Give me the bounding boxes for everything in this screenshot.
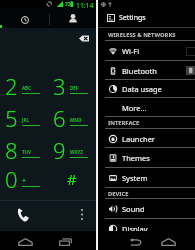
- staticText: Launcher: [122, 134, 155, 144]
- button[interactable]: System: [98, 168, 195, 188]
- staticText: DEF: [70, 85, 79, 91]
- staticText: 9: [53, 135, 66, 165]
- button[interactable]: Themes: [98, 148, 195, 168]
- button[interactable]: Data usage: [98, 80, 195, 98]
- button[interactable]: 5: [0, 97, 48, 129]
- staticText: 11:14: [76, 1, 94, 9]
- staticText: 8: [5, 135, 18, 165]
- staticText: 3: [53, 71, 66, 101]
- staticText: ABC: [22, 85, 31, 91]
- staticText: Settings: [119, 13, 146, 23]
- staticText: 5: [5, 103, 18, 133]
- button[interactable]: 9: [48, 129, 96, 161]
- button[interactable]: Display: [98, 219, 195, 238]
- staticText: Sound: [122, 204, 145, 214]
- staticText: Display: [122, 224, 148, 234]
- staticText: Wi-Fi: [122, 46, 140, 56]
- button[interactable]: Home: [13, 231, 38, 250]
- staticText: JKL: [22, 117, 29, 123]
- button[interactable]: Settings: [98, 9, 195, 27]
- button[interactable]: 8: [0, 129, 48, 161]
- staticText: #: [67, 169, 77, 189]
- staticText: 2: [5, 71, 18, 101]
- button[interactable]: Call: [12, 203, 34, 226]
- staticText: WXYZ: [70, 149, 83, 155]
- button[interactable]: More...: [98, 98, 195, 117]
- button[interactable]: Launcher: [98, 129, 195, 148]
- staticText: 6: [53, 103, 66, 133]
- button[interactable]: Contacts: [50, 8, 96, 28]
- button[interactable]: Home: [156, 231, 181, 250]
- button[interactable]: #: [48, 158, 96, 190]
- staticText: System: [122, 173, 148, 183]
- staticText: MNO: [70, 117, 82, 123]
- button[interactable]: Backspace: [79, 35, 89, 42]
- staticText: 0: [5, 164, 18, 194]
- staticText: DEVICE: [108, 190, 129, 198]
- button[interactable]: More options: [75, 203, 89, 226]
- staticText: WIRELESS & NETWORKS: [108, 31, 176, 39]
- button[interactable]: Back: [123, 231, 148, 250]
- staticText: More...: [122, 103, 147, 113]
- button[interactable]: Wi-Fi: [98, 41, 195, 61]
- button[interactable]: 2: [0, 65, 48, 97]
- staticText: Themes: [122, 153, 150, 163]
- button[interactable]: 0: [0, 158, 48, 190]
- staticText: INTERFACE: [108, 119, 140, 127]
- button[interactable]: 6: [48, 97, 96, 129]
- staticText: Data usage: [122, 84, 162, 94]
- staticText: Bluetooth: [122, 66, 157, 76]
- button[interactable]: Sound: [98, 199, 195, 219]
- button[interactable]: Bluetooth: [98, 61, 195, 80]
- button[interactable]: Call log: [0, 8, 49, 28]
- button[interactable]: 3: [48, 65, 96, 97]
- staticText: TUV: [22, 149, 31, 155]
- button[interactable]: Recent apps: [53, 231, 77, 250]
- staticText: +: [22, 176, 27, 186]
- staticText: 72: [65, 1, 71, 8]
